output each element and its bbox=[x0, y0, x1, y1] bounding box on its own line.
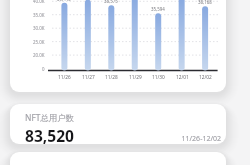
staticText: 83,520 bbox=[25, 125, 75, 144]
staticText: 11/28 bbox=[105, 74, 118, 81]
staticText: 38,168 bbox=[198, 0, 212, 5]
staticText: 38,575 bbox=[104, 0, 118, 4]
staticText: NFT总用户数 bbox=[25, 112, 74, 123]
staticText: 20.0K bbox=[33, 52, 45, 58]
staticText: 11/26 bbox=[58, 74, 71, 81]
staticText: 12/01 bbox=[176, 74, 189, 81]
button[interactable]: 40.0K bbox=[10, 0, 226, 92]
staticText: 35.0K bbox=[33, 12, 45, 18]
staticText: 40.0K bbox=[33, 0, 45, 4]
staticText: 11/27 bbox=[82, 74, 95, 81]
staticText: 12/02 bbox=[199, 74, 212, 81]
staticText: 25.0K bbox=[33, 39, 45, 45]
staticText: 30.0K bbox=[33, 25, 45, 31]
staticText: 0 bbox=[42, 66, 45, 72]
staticText: 11/29 bbox=[129, 74, 142, 81]
button[interactable]: NFT总用户数 bbox=[10, 104, 226, 144]
staticText: 39,443 bbox=[57, 0, 71, 2]
staticText: 11/26-12/02 bbox=[140, 134, 221, 144]
staticText: 11/30 bbox=[152, 74, 165, 81]
staticText: 35,594 bbox=[151, 6, 165, 12]
